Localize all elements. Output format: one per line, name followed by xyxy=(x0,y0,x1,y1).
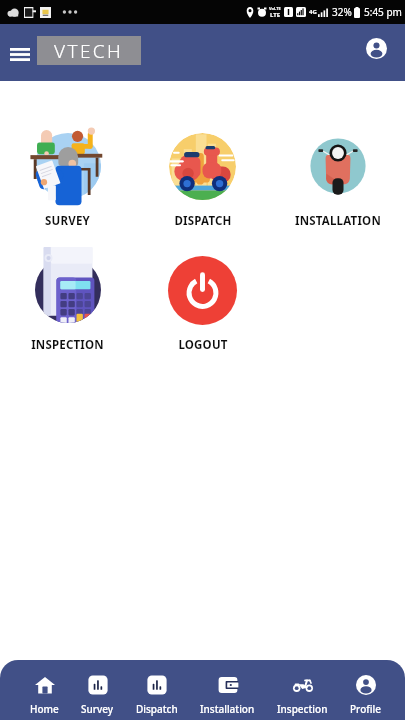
staticText: 5:45 pm xyxy=(364,5,402,19)
button[interactable]: Installation xyxy=(189,660,266,720)
button[interactable]: Home xyxy=(19,660,70,720)
staticText: INSPECTION xyxy=(31,337,104,353)
staticText: LTE xyxy=(270,11,281,19)
staticText: 32% xyxy=(332,5,352,19)
staticText: VTECH xyxy=(54,38,124,64)
staticText: Dispatch xyxy=(136,702,178,716)
staticText: Installation xyxy=(200,702,255,716)
staticText: Home xyxy=(30,702,59,716)
button[interactable]: DISPATCH xyxy=(135,123,270,229)
staticText: Survey xyxy=(81,702,114,716)
button[interactable]: Inspection xyxy=(266,660,339,720)
button[interactable]: INSTALLATION xyxy=(270,123,405,229)
staticText: SURVEY xyxy=(45,213,90,229)
button[interactable]: Dispatch xyxy=(125,660,189,720)
button[interactable]: Profile xyxy=(339,660,392,720)
staticText: Profile xyxy=(350,702,381,716)
button[interactable]: LOGOUT xyxy=(135,247,270,353)
button[interactable]: INSPECTION xyxy=(0,247,135,353)
button[interactable]: SURVEY xyxy=(0,123,135,229)
button[interactable]: Survey xyxy=(70,660,125,720)
staticText: DISPATCH xyxy=(174,213,232,229)
staticText: LOGOUT xyxy=(178,337,228,353)
staticText: INSTALLATION xyxy=(295,213,381,229)
staticText: Inspection xyxy=(277,702,328,716)
staticText: 4G xyxy=(309,8,317,16)
button[interactable]: Account profile xyxy=(358,24,394,81)
staticText: VoLTE xyxy=(269,6,281,11)
button[interactable]: Open navigation menu xyxy=(0,24,40,81)
